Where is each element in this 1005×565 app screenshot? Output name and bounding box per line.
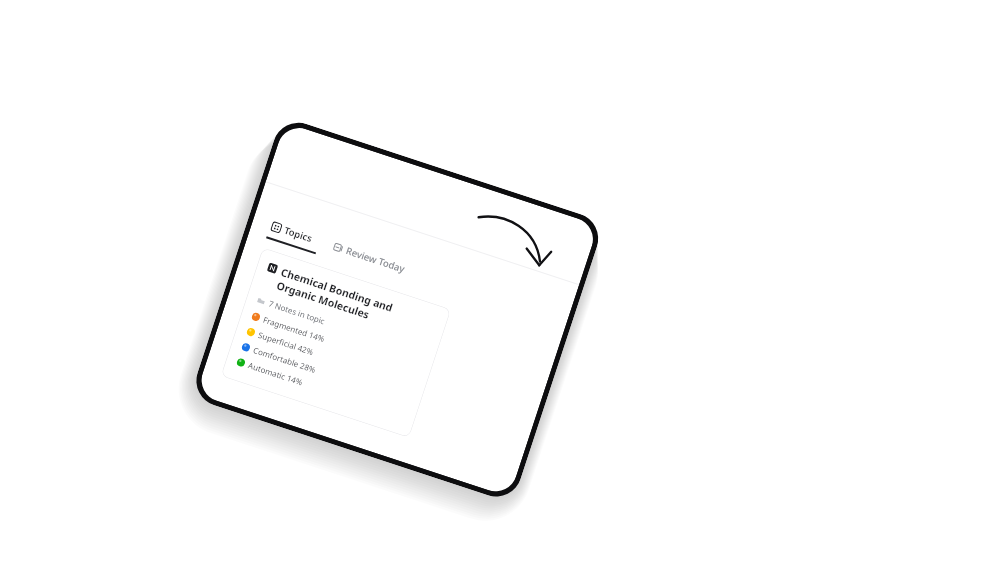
staticText: Review Today [344,244,407,276]
button[interactable]: Topics [266,217,322,254]
staticText: 7 Notes in topic [267,298,327,326]
staticText: Chemical Bonding and Organic Molecules [275,265,395,328]
other: Annotation arrow [465,203,559,273]
staticText: Automatic 14% [247,359,305,388]
staticText: Comfortable 28% [252,344,318,375]
staticText: Fragmented 14% [262,314,326,344]
staticText: Superficial 42% [257,329,315,357]
staticText: Topics [282,224,314,245]
button[interactable]: Chemical Bonding and Organic Molecules [221,248,451,438]
button[interactable]: Review Today [329,237,410,278]
